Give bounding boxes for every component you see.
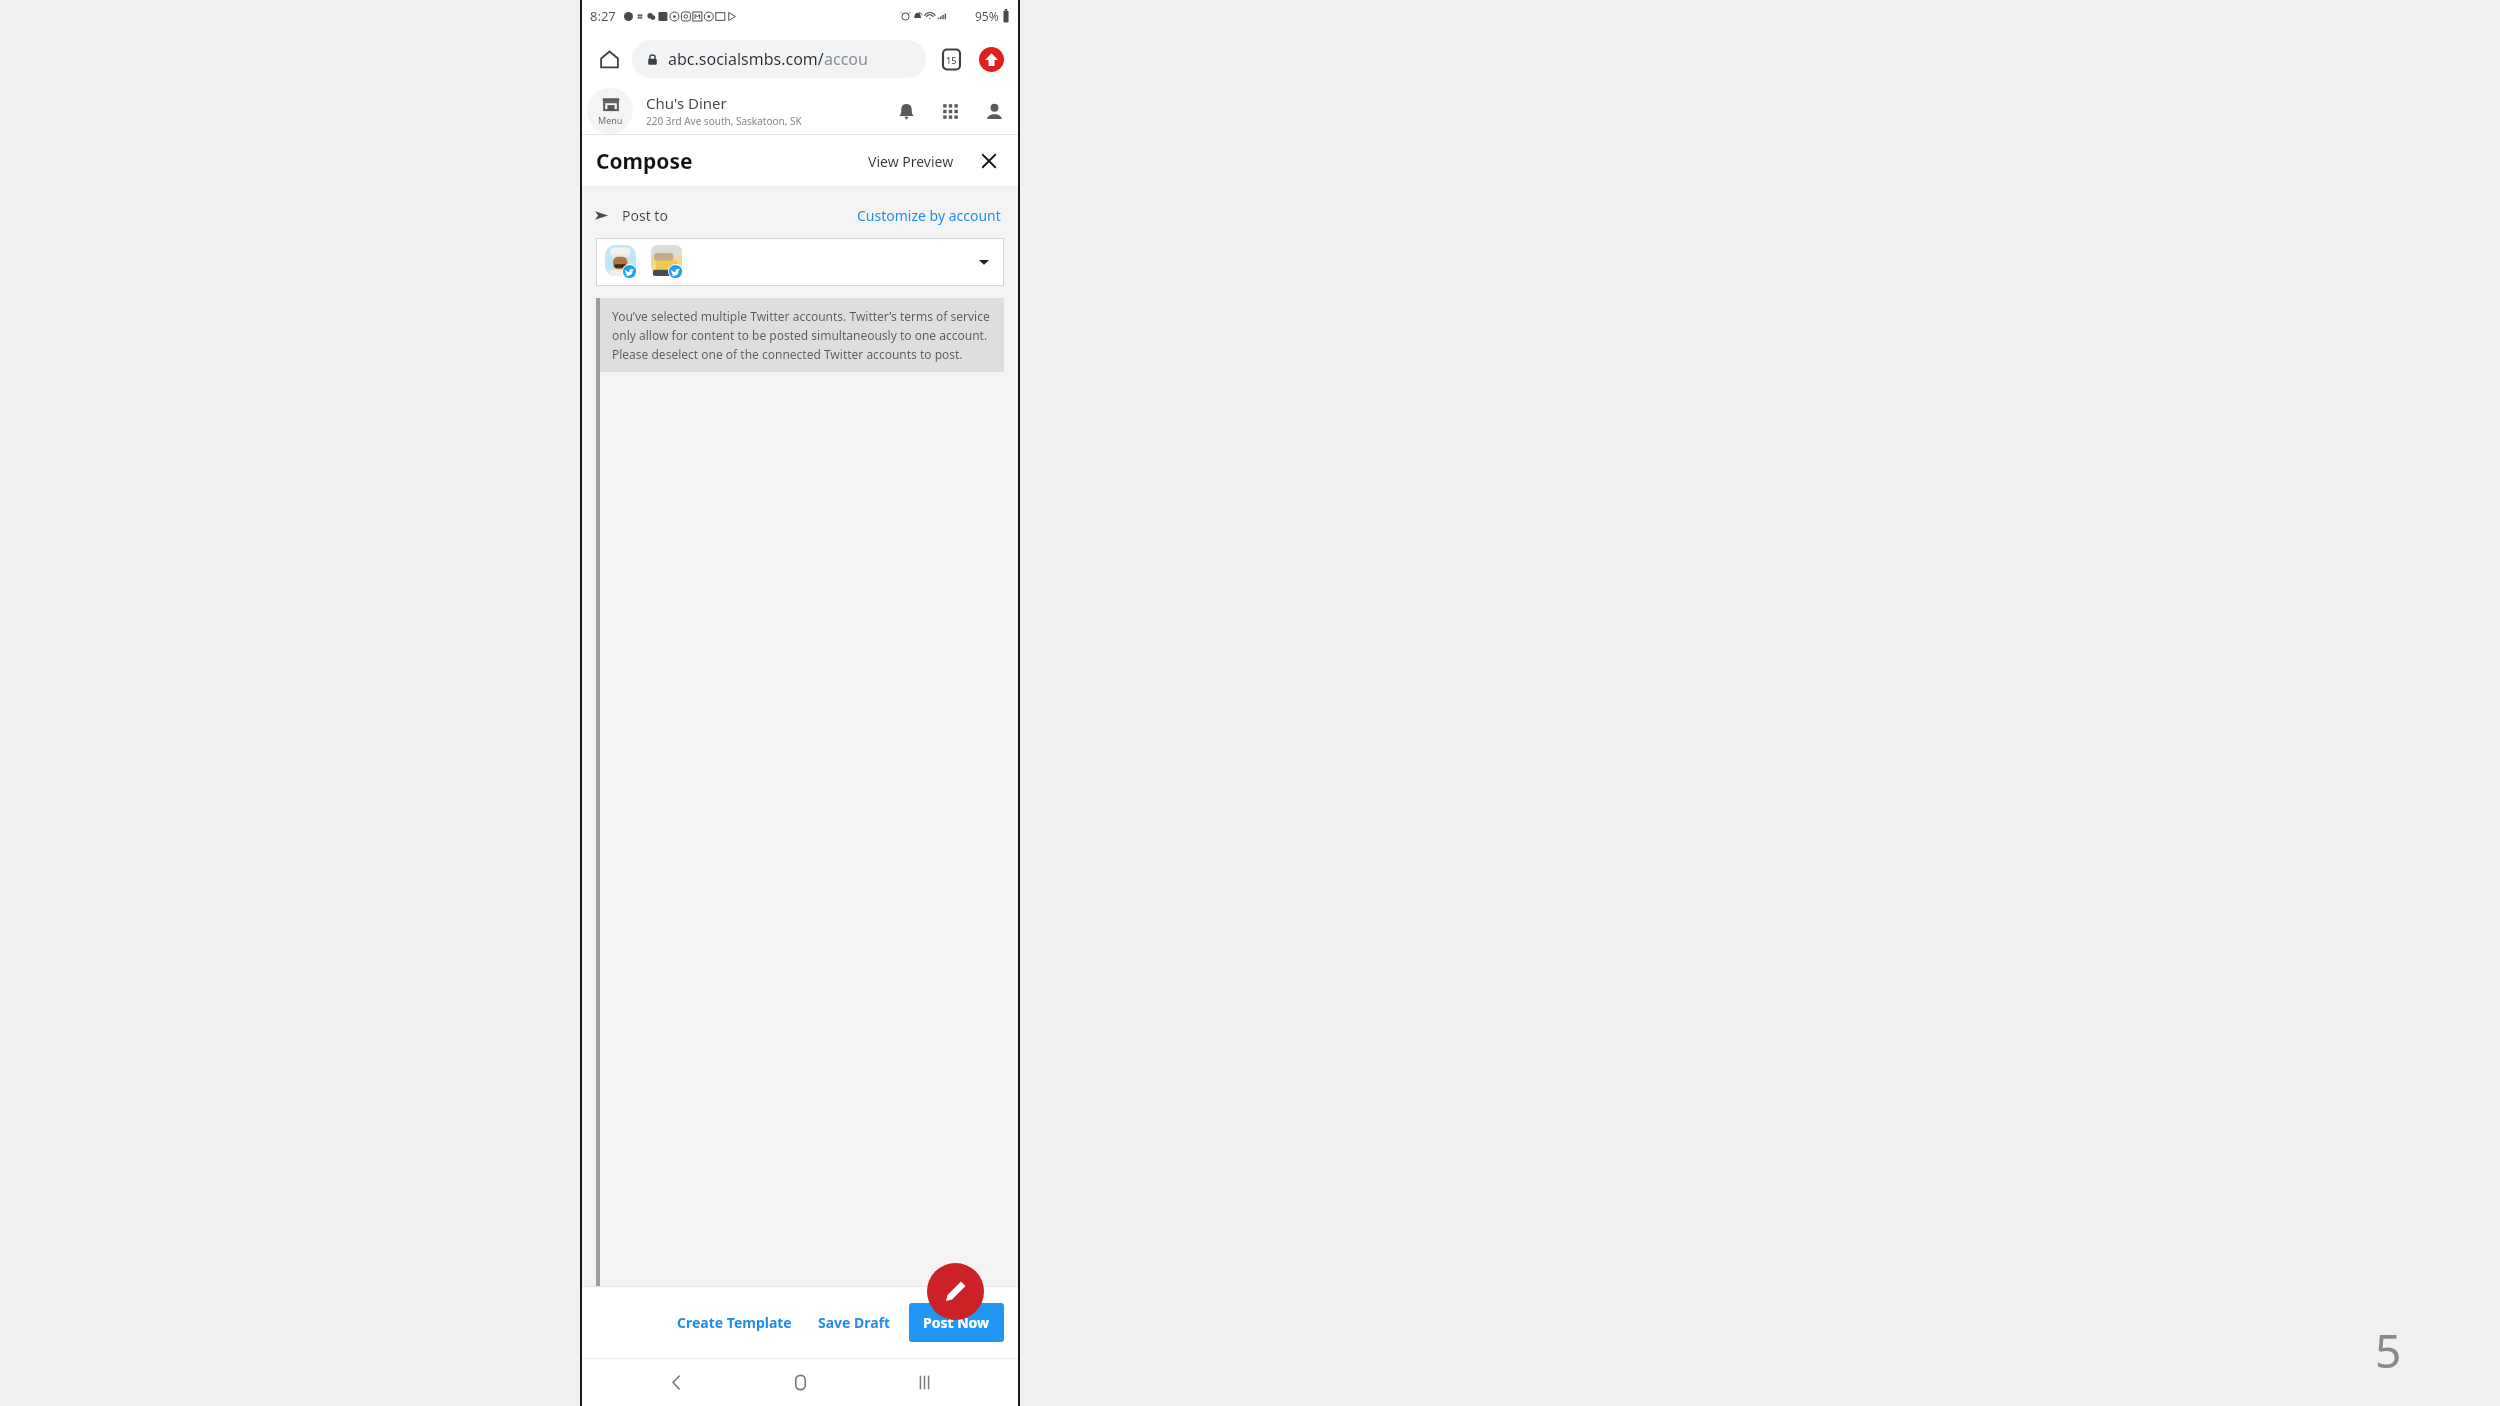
staticText: Create Template [677,1313,792,1332]
staticText: 220 3rd Ave south, Saskatoon, SK [646,114,802,128]
staticText: View Preview [868,152,954,171]
staticText: accou [824,48,868,70]
button[interactable]: Recent apps [896,1358,952,1406]
button[interactable]: Create Template [667,1305,802,1340]
button[interactable]: Save Draft [808,1305,901,1340]
button[interactable] [596,238,1004,286]
button[interactable]: Tabs [934,42,968,76]
button[interactable]: abc.socialsmbs.com/ [632,40,926,78]
staticText: 15 [946,54,957,66]
button[interactable]: Compose new post [927,1263,984,1320]
staticText: Menu [598,114,623,126]
button[interactable]: Apps [928,89,972,133]
button[interactable]: Menu [582,86,638,135]
staticText: abc.socialsmbs.com/ [668,48,824,70]
staticText: Post Now [923,1313,990,1332]
staticText: 95% [975,8,999,24]
staticText: 5 [2375,1319,2402,1382]
button[interactable]: Update [974,42,1008,76]
button[interactable]: Home [772,1358,828,1406]
staticText: Chu's Diner [646,93,727,113]
staticText: Save Draft [818,1313,891,1332]
staticText: 8:27 [590,7,616,25]
staticText: Compose [596,147,693,176]
staticText: Customize by account [857,206,1001,225]
button[interactable]: Close [974,146,1004,176]
button[interactable]: Account [972,89,1016,133]
staticText: Post to [622,206,668,225]
button[interactable]: Customize by account [854,203,1004,228]
button[interactable]: Post Now [909,1303,1004,1342]
staticText: You’ve selected multiple Twitter account… [612,308,992,362]
button[interactable]: Notifications [884,89,928,133]
button[interactable]: Back [648,1358,704,1406]
button[interactable]: Home [592,42,626,76]
button[interactable]: View Preview [862,146,960,177]
